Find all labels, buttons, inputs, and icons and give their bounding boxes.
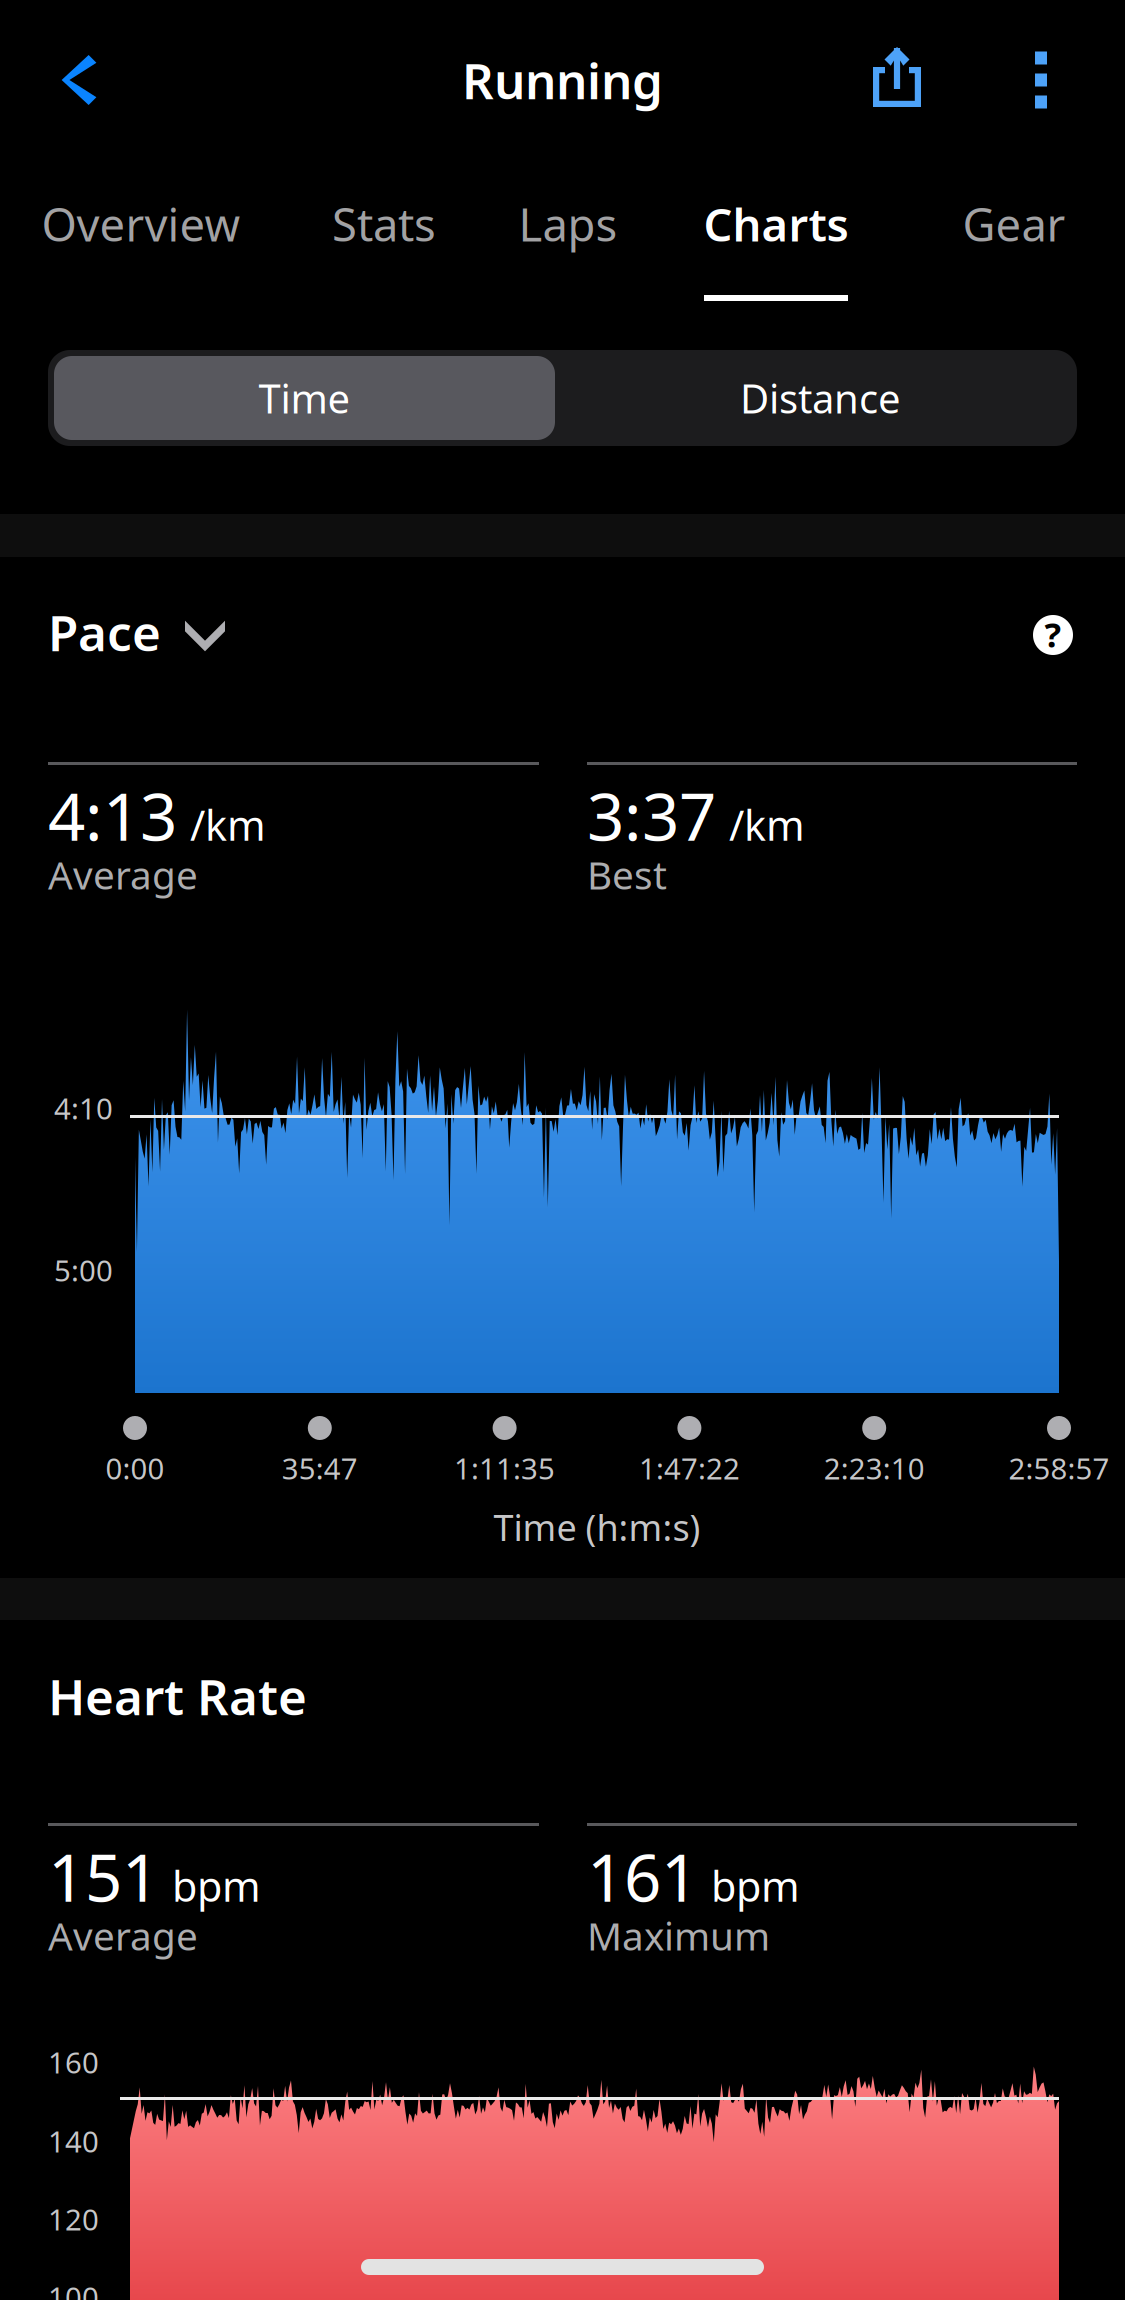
staticText: Running bbox=[462, 47, 663, 113]
button[interactable]: Gear bbox=[899, 199, 1125, 314]
staticText: 4:13 bbox=[48, 772, 177, 859]
button[interactable]: More options bbox=[986, 25, 1096, 135]
staticText: 3:37 bbox=[587, 772, 716, 859]
staticText: Average bbox=[48, 1910, 198, 1961]
staticText: Average bbox=[48, 849, 198, 900]
staticText: Stats bbox=[332, 194, 436, 254]
staticText: Time bbox=[258, 371, 350, 424]
button[interactable]: Pace bbox=[48, 599, 225, 665]
staticText: Maximum bbox=[587, 1910, 770, 1961]
staticText: 140 bbox=[48, 2121, 99, 2160]
button[interactable]: Stats bbox=[269, 199, 499, 314]
staticText: 35:47 bbox=[282, 1448, 358, 1487]
staticText: Distance bbox=[740, 371, 901, 424]
staticText: /km bbox=[190, 797, 266, 852]
button[interactable]: Overview bbox=[26, 199, 256, 314]
staticText: 2:23:10 bbox=[824, 1448, 925, 1487]
staticText: Best bbox=[587, 849, 667, 900]
staticText: 120 bbox=[48, 2199, 99, 2238]
staticText: 151 bbox=[48, 1833, 159, 1920]
staticText: Charts bbox=[703, 194, 848, 254]
staticText: Gear bbox=[962, 194, 1065, 254]
staticText: 1:47:22 bbox=[639, 1448, 740, 1487]
staticText: 100 bbox=[48, 2277, 99, 2300]
staticText: 160 bbox=[48, 2042, 99, 2081]
staticText: Heart Rate bbox=[48, 1663, 307, 1729]
staticText: bpm bbox=[711, 1858, 800, 1913]
staticText: Time (h:m:s) bbox=[493, 1503, 700, 1551]
button[interactable]: Share bbox=[842, 22, 952, 132]
staticText: ? bbox=[1044, 611, 1061, 657]
staticText: /km bbox=[729, 797, 805, 852]
button[interactable]: Help bbox=[1033, 615, 1073, 655]
staticText: 5:00 bbox=[54, 1250, 113, 1289]
staticText: 4:10 bbox=[54, 1088, 113, 1127]
button[interactable]: Charts bbox=[661, 199, 891, 314]
staticText: bpm bbox=[172, 1858, 261, 1913]
staticText: Laps bbox=[518, 194, 617, 254]
button[interactable]: Laps bbox=[453, 199, 683, 314]
staticText: Pace bbox=[48, 599, 161, 665]
button[interactable]: Back bbox=[24, 25, 134, 135]
staticText: Overview bbox=[41, 194, 240, 254]
staticText: 0:00 bbox=[105, 1448, 164, 1487]
button[interactable]: Time bbox=[54, 356, 555, 440]
staticText: 161 bbox=[587, 1833, 698, 1920]
button[interactable]: Distance bbox=[570, 356, 1071, 440]
staticText: 1:11:35 bbox=[454, 1448, 555, 1487]
staticText: 2:58:57 bbox=[1008, 1448, 1109, 1487]
